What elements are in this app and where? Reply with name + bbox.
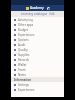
button[interactable]: Activity log	[11, 17, 64, 22]
staticText: Settings	[18, 83, 29, 87]
staticText: Academy	[30, 6, 44, 10]
staticText: Supplies	[18, 53, 30, 57]
staticText: Quality	[18, 48, 28, 52]
staticText: Experiences	[18, 33, 35, 37]
staticText: Experiences	[18, 88, 35, 92]
staticText: Learning catalogue Edit	[21, 12, 55, 16]
staticText: Notes	[18, 73, 27, 77]
button[interactable]: Options	[11, 37, 64, 42]
button[interactable]: Other apps	[11, 22, 64, 27]
staticText: Other apps	[18, 23, 34, 27]
staticText: Audit	[18, 43, 26, 47]
staticText: Budget	[18, 28, 28, 32]
button[interactable]: Wallet	[11, 62, 64, 67]
staticText: Options	[18, 38, 29, 42]
button[interactable]: Team	[11, 67, 64, 72]
button[interactable]: Account	[47, 7, 50, 10]
button[interactable]: Experiences	[11, 32, 64, 37]
button[interactable]: Budget	[11, 27, 64, 32]
staticText: Wallet	[18, 63, 27, 67]
button[interactable]: Records	[11, 57, 64, 62]
staticText: Activity log	[18, 18, 33, 22]
staticText: Records	[18, 58, 29, 62]
staticText: Team	[18, 68, 26, 72]
button[interactable]: Notes	[11, 72, 64, 77]
button[interactable]: Settings	[11, 82, 64, 87]
button[interactable]: Supplies	[11, 52, 64, 57]
button[interactable]: Experiences	[11, 87, 64, 92]
button[interactable]: Learning catalogue Edit	[11, 11, 64, 17]
staticText: Information	[14, 78, 32, 82]
button[interactable]: Quality	[11, 47, 64, 52]
button[interactable]: Audit	[11, 42, 64, 47]
